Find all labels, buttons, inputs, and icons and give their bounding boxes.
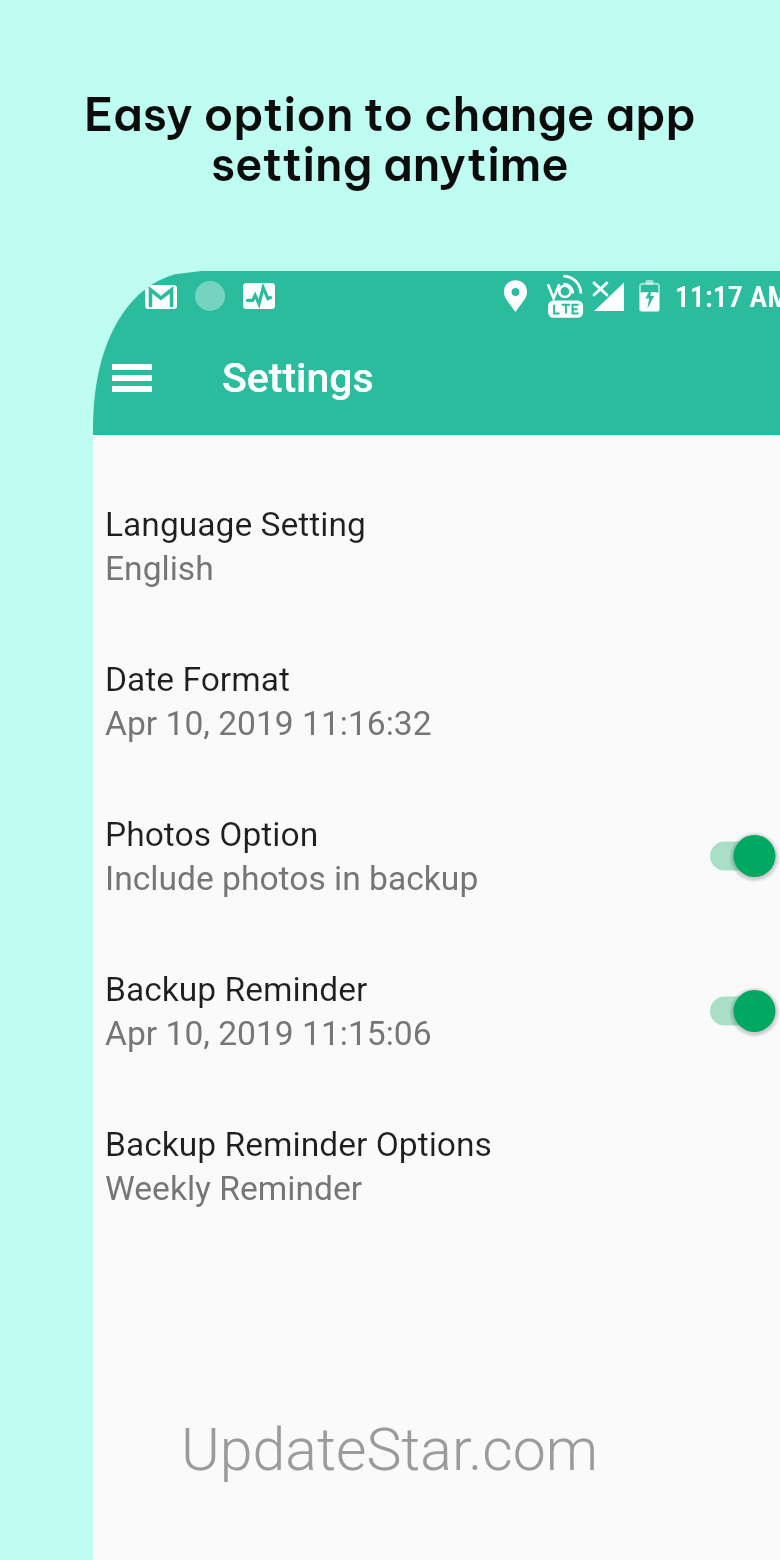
button[interactable]: Date Format — [93, 628, 780, 776]
staticText: Include photos in backup — [105, 859, 479, 898]
staticText: UpdateStar.com — [181, 1415, 599, 1484]
staticText: Settings — [222, 354, 374, 402]
button[interactable]: Photos Option — [93, 783, 780, 931]
button[interactable]: Backup Reminder — [93, 938, 780, 1086]
button[interactable]: Language Setting — [93, 473, 780, 621]
staticText: Photos Option — [105, 815, 319, 854]
staticText: 11:17 AM — [675, 279, 780, 314]
button[interactable]: Open navigation menu — [93, 346, 172, 410]
staticText: Apr 10, 2019 11:16:32 — [105, 704, 432, 743]
staticText: Weekly Reminder — [105, 1169, 363, 1208]
staticText: Date Format — [105, 660, 290, 699]
staticText: Backup Reminder Options — [105, 1125, 492, 1164]
staticText: Easy option to change app setting anytim… — [0, 85, 780, 193]
staticText: Backup Reminder — [105, 970, 368, 1009]
button[interactable]: Toggle Photos Option — [704, 828, 780, 884]
staticText: English — [105, 549, 214, 588]
button[interactable]: Toggle Backup Reminder — [704, 983, 780, 1039]
button[interactable]: Backup Reminder Options — [93, 1093, 780, 1241]
staticText: Language Setting — [105, 505, 366, 544]
staticText: Apr 10, 2019 11:15:06 — [105, 1014, 432, 1053]
